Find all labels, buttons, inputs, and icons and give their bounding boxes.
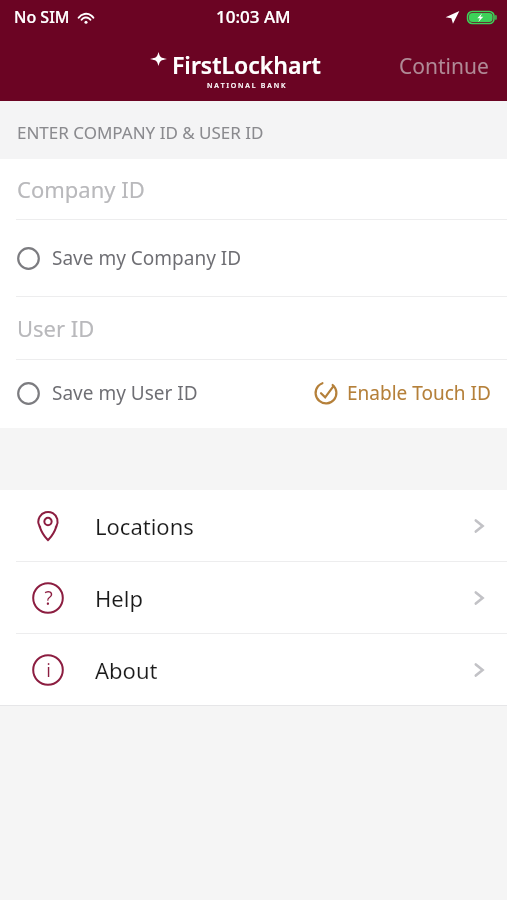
staticText: Company ID [17, 174, 145, 204]
staticText: Help [95, 583, 143, 613]
button[interactable]: i [0, 634, 507, 705]
staticText: User ID [17, 313, 95, 343]
staticText: ENTER COMPANY ID & USER ID [17, 121, 264, 144]
staticText: Save my User ID [52, 380, 198, 406]
button[interactable]: Continue [395, 48, 493, 85]
staticText: ? [44, 585, 53, 611]
staticText: Enable Touch ID [347, 380, 491, 406]
staticText: i [46, 658, 51, 683]
staticText: Continue [399, 52, 489, 81]
staticText: N A T I O N A L B A N K [207, 81, 286, 91]
staticText: FirstLockhart [172, 49, 321, 80]
button[interactable]: User ID [0, 297, 507, 359]
button[interactable]: Save my User ID [0, 374, 206, 412]
staticText: 10:03 AM [216, 5, 291, 28]
button[interactable]: Company ID [0, 159, 507, 219]
button[interactable]: ? [0, 562, 507, 633]
staticText: About [95, 655, 158, 685]
staticText: Locations [95, 511, 194, 541]
button[interactable]: Locations [0, 490, 507, 561]
button[interactable]: Save my Company ID [0, 220, 507, 296]
button[interactable]: Enable Touch ID [306, 374, 507, 412]
staticText: No SIM [14, 6, 70, 28]
staticText: Save my Company ID [52, 245, 242, 271]
